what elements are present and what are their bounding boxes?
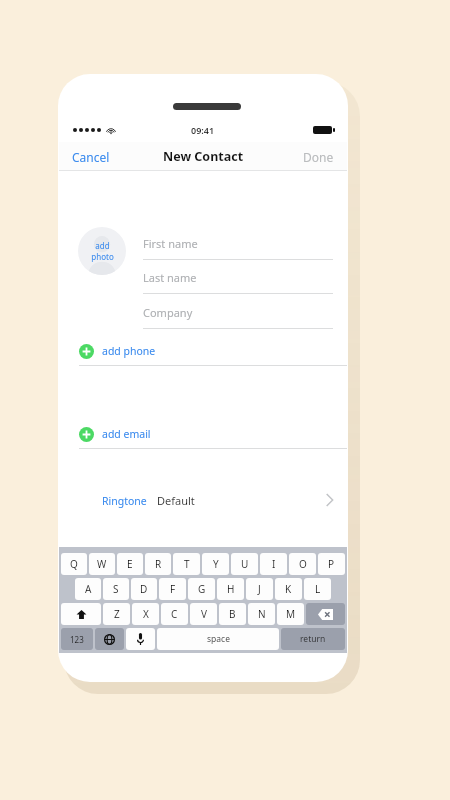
staticText: Company — [143, 305, 193, 320]
button[interactable]: V — [190, 603, 217, 625]
staticText: return — [300, 633, 326, 645]
staticText: T — [184, 557, 190, 571]
staticText: Ringtone — [102, 494, 147, 508]
button[interactable]: L — [304, 578, 331, 600]
button[interactable]: T — [173, 553, 200, 575]
staticText: New Contact — [163, 148, 244, 165]
staticText: Y — [213, 557, 219, 571]
staticText: add email — [102, 427, 151, 441]
staticText: G — [198, 582, 206, 596]
button[interactable]: Cancel — [59, 144, 123, 170]
button[interactable]: U — [231, 553, 258, 575]
button[interactable]: Company — [143, 295, 333, 329]
button[interactable]: Backspace — [306, 603, 345, 625]
staticText: 09:41 — [191, 124, 215, 136]
button[interactable]: Ringtone — [59, 483, 347, 517]
button[interactable]: J — [246, 578, 273, 600]
button[interactable]: add — [78, 227, 126, 275]
button[interactable]: Done — [290, 144, 347, 170]
staticText: J — [258, 582, 261, 596]
staticText: V — [201, 607, 207, 621]
button[interactable]: W — [89, 553, 115, 575]
staticText: space — [207, 633, 230, 645]
staticText: R — [155, 557, 162, 571]
staticText: First name — [143, 236, 198, 251]
button[interactable]: H — [217, 578, 244, 600]
staticText: S — [113, 582, 119, 596]
staticText: Cancel — [72, 149, 110, 165]
staticText: C — [171, 607, 178, 621]
button[interactable]: Y — [202, 553, 229, 575]
staticText: D — [140, 582, 148, 596]
button[interactable]: return — [281, 628, 345, 650]
button[interactable]: E — [117, 553, 143, 575]
button[interactable]: Change keyboard — [95, 628, 124, 650]
staticText: H — [227, 582, 235, 596]
staticText: M — [286, 607, 296, 621]
staticText: E — [127, 557, 133, 571]
staticText: X — [143, 607, 149, 621]
staticText: Last name — [143, 270, 197, 285]
button[interactable]: add email — [59, 419, 347, 449]
button[interactable]: X — [132, 603, 159, 625]
button[interactable]: First name — [143, 226, 333, 260]
button[interactable]: G — [188, 578, 215, 600]
staticText: Default — [157, 493, 195, 508]
staticText: add — [95, 240, 110, 251]
staticText: K — [285, 582, 292, 596]
button[interactable]: A — [75, 578, 101, 600]
button[interactable]: B — [219, 603, 246, 625]
staticText: 123 — [70, 634, 84, 645]
staticText: add phone — [102, 344, 156, 358]
button[interactable]: Z — [103, 603, 130, 625]
button[interactable]: P — [318, 553, 345, 575]
button[interactable]: S — [103, 578, 129, 600]
button[interactable]: C — [161, 603, 188, 625]
button[interactable]: R — [145, 553, 171, 575]
button[interactable]: N — [248, 603, 275, 625]
button[interactable]: I — [260, 553, 287, 575]
button[interactable]: K — [275, 578, 302, 600]
button[interactable]: add phone — [59, 336, 347, 366]
staticText: Done — [303, 149, 334, 165]
staticText: N — [258, 607, 266, 621]
button[interactable]: F — [159, 578, 186, 600]
staticText: P — [328, 557, 335, 571]
button[interactable]: O — [289, 553, 316, 575]
button[interactable]: 123 — [61, 628, 93, 650]
staticText: F — [170, 582, 176, 596]
staticText: A — [85, 582, 92, 596]
staticText: W — [97, 557, 107, 571]
staticText: Q — [70, 557, 78, 571]
button[interactable]: Shift — [61, 603, 101, 625]
staticText: B — [229, 607, 236, 621]
button[interactable]: D — [131, 578, 157, 600]
button[interactable]: Last name — [143, 260, 333, 294]
button[interactable]: M — [277, 603, 304, 625]
button[interactable]: Dictation — [126, 628, 155, 650]
staticText: L — [315, 582, 321, 596]
button[interactable]: Q — [61, 553, 87, 575]
staticText: U — [241, 557, 249, 571]
button[interactable]: space — [157, 628, 279, 650]
staticText: photo — [91, 251, 114, 262]
staticText: I — [272, 557, 276, 571]
staticText: Z — [114, 607, 120, 621]
staticText: O — [299, 557, 307, 571]
